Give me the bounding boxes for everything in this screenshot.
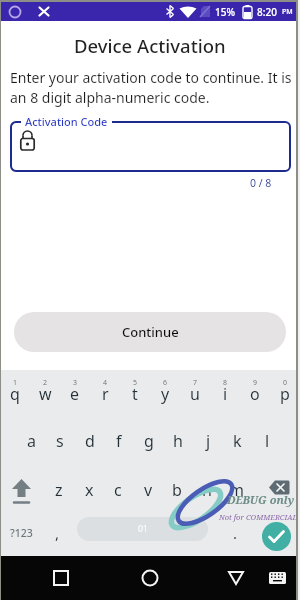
- staticText: Device Activation: [74, 33, 226, 56]
- button[interactable]: g: [134, 418, 164, 464]
- staticText: o: [250, 383, 260, 405]
- staticText: 6: [163, 378, 168, 388]
- staticText: Continue: [122, 323, 179, 341]
- button[interactable]: k: [222, 418, 252, 464]
- button[interactable]: .: [220, 511, 250, 555]
- button[interactable]: 01: [77, 517, 208, 541]
- button[interactable]: 1: [0, 370, 30, 419]
- button[interactable]: ?123: [0, 511, 43, 555]
- staticText: r: [102, 383, 109, 405]
- staticText: c: [114, 479, 122, 501]
- staticText: v: [144, 479, 153, 501]
- staticText: Not for COMMERCIAL: [219, 512, 298, 522]
- staticText: y: [161, 383, 170, 405]
- staticText: 0 / 8: [250, 176, 272, 190]
- staticText: 0: [283, 378, 288, 388]
- staticText: a: [27, 430, 36, 452]
- button[interactable]: j: [193, 418, 223, 464]
- staticText: q: [10, 383, 20, 405]
- button[interactable]: [256, 470, 300, 512]
- staticText: n: [202, 479, 212, 501]
- button[interactable]: 6: [150, 370, 180, 419]
- button[interactable]: Continue: [14, 312, 286, 352]
- button[interactable]: n: [192, 467, 222, 512]
- button[interactable]: 7: [180, 370, 210, 419]
- staticText: 7: [193, 378, 198, 388]
- staticText: b: [172, 479, 182, 501]
- button[interactable]: 0: [270, 370, 300, 419]
- staticText: s: [56, 430, 64, 452]
- button[interactable]: 3: [60, 370, 90, 419]
- button[interactable]: ,: [42, 511, 72, 555]
- button[interactable]: 9: [240, 370, 270, 419]
- staticText: m: [229, 479, 244, 501]
- button[interactable]: v: [133, 467, 163, 512]
- staticText: j: [206, 430, 211, 452]
- staticText: PM: [282, 7, 293, 17]
- staticText: d: [85, 430, 95, 452]
- staticText: z: [55, 479, 63, 501]
- staticText: p: [280, 383, 290, 405]
- button[interactable]: [262, 522, 291, 551]
- staticText: u: [190, 383, 200, 405]
- staticText: l: [265, 430, 270, 452]
- button[interactable]: b: [162, 467, 192, 512]
- staticText: 8:20: [257, 5, 277, 19]
- staticText: ?123: [10, 526, 33, 540]
- staticText: h: [173, 430, 183, 452]
- staticText: Enter your activation code to continue. …: [10, 68, 292, 107]
- button[interactable]: [222, 561, 250, 595]
- staticText: 9: [253, 378, 258, 388]
- button[interactable]: 8: [210, 370, 240, 419]
- button[interactable]: [262, 561, 294, 595]
- button[interactable]: 5: [120, 370, 150, 419]
- staticText: 01: [138, 523, 148, 535]
- button[interactable]: d: [75, 418, 105, 464]
- staticText: 1: [13, 378, 18, 388]
- staticText: 8: [223, 378, 228, 388]
- button[interactable]: f: [104, 418, 134, 464]
- staticText: t: [132, 383, 138, 405]
- button[interactable]: z: [44, 467, 74, 512]
- staticText: 3: [73, 378, 78, 388]
- button[interactable]: [136, 561, 164, 595]
- button[interactable]: l: [252, 418, 282, 464]
- button[interactable]: m: [221, 467, 251, 512]
- staticText: f: [116, 430, 122, 452]
- button[interactable]: a: [16, 418, 46, 464]
- staticText: 15%: [215, 5, 235, 19]
- button[interactable]: x: [74, 467, 104, 512]
- staticText: 4: [103, 378, 108, 388]
- button[interactable]: c: [103, 467, 133, 512]
- staticText: Activation Code: [25, 114, 108, 129]
- staticText: x: [85, 479, 94, 501]
- staticText: i: [223, 383, 228, 405]
- button[interactable]: 4: [90, 370, 120, 419]
- button[interactable]: h: [163, 418, 193, 464]
- button[interactable]: 2: [30, 370, 60, 419]
- button[interactable]: [50, 561, 78, 595]
- staticText: g: [144, 430, 154, 452]
- staticText: 5: [133, 378, 138, 388]
- staticText: e: [70, 383, 80, 405]
- staticText: w: [39, 383, 52, 405]
- staticText: DEBUG only: [227, 492, 295, 507]
- button[interactable]: s: [45, 418, 75, 464]
- button[interactable]: [10, 121, 291, 172]
- staticText: 2: [43, 378, 48, 388]
- staticText: k: [233, 430, 242, 452]
- staticText: .: [233, 523, 238, 543]
- button[interactable]: [0, 470, 44, 512]
- staticText: ,: [55, 523, 60, 543]
